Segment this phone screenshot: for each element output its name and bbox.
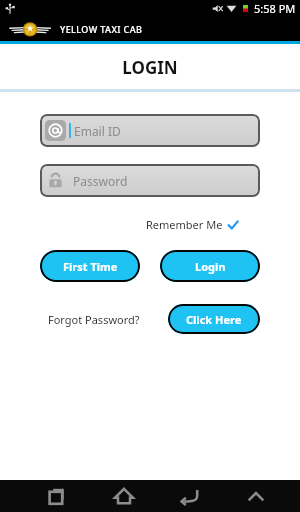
staticText: YELLOW TAXI CAB [60, 23, 143, 35]
staticText: Password [73, 173, 128, 189]
staticText: 5:58 PM [254, 1, 296, 16]
button[interactable]: Email ID [40, 114, 260, 147]
button[interactable]: Recent apps [38, 480, 78, 512]
staticText: Remember Me [146, 217, 223, 232]
staticText: Click Here [186, 312, 242, 327]
staticText: Email ID [74, 123, 121, 139]
staticText: First Time [63, 259, 118, 274]
staticText: LOGIN [0, 56, 300, 79]
button[interactable]: First Time [40, 250, 140, 282]
button[interactable]: Login [160, 250, 260, 282]
button[interactable]: Remember Me [142, 213, 242, 236]
staticText: Forgot Password? [48, 312, 140, 327]
button[interactable]: Password [40, 164, 260, 197]
button[interactable]: Back [170, 480, 210, 512]
button[interactable]: Show notifications [236, 480, 276, 512]
staticText: Login [195, 259, 226, 274]
button[interactable]: Click Here [168, 304, 260, 334]
button[interactable]: Home [104, 480, 144, 512]
